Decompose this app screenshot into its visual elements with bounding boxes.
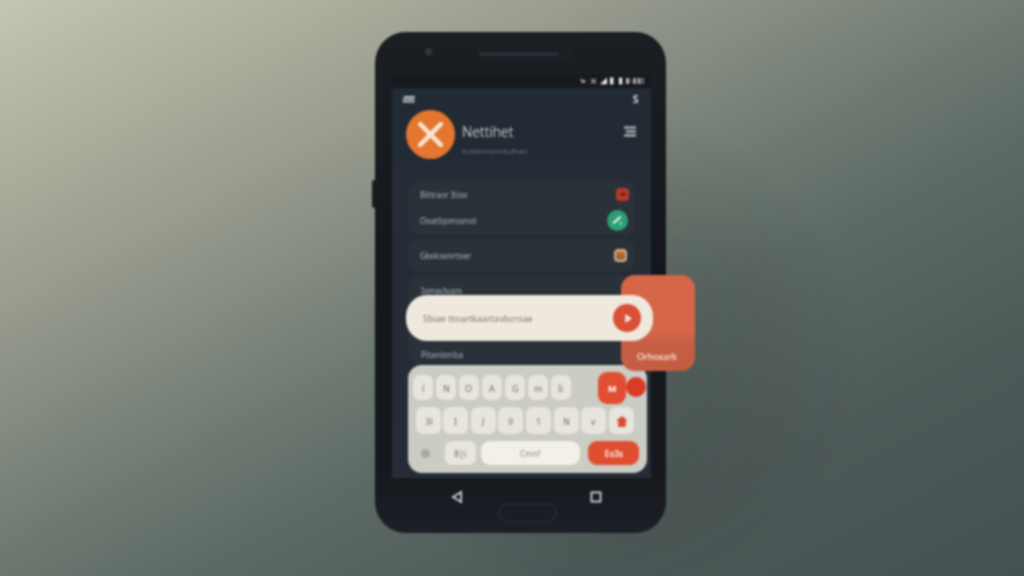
staticText: Cmnf bbox=[520, 448, 541, 459]
button[interactable]: N bbox=[436, 375, 456, 400]
staticText: v bbox=[591, 415, 596, 427]
button[interactable]: Recent apps bbox=[590, 491, 602, 503]
button[interactable]: 3l bbox=[416, 407, 441, 434]
button[interactable]: l bbox=[413, 375, 433, 400]
button[interactable]: Cmnf bbox=[481, 441, 580, 465]
staticText: Kottihmenrdufhan bbox=[462, 146, 528, 156]
button[interactable]: Home bbox=[609, 407, 634, 434]
staticText: Nettihet bbox=[462, 122, 514, 141]
button[interactable]: Ooatbpmsxnot bbox=[408, 206, 635, 235]
staticText: Bittraor Itiox bbox=[420, 189, 468, 200]
staticText: Eo3s bbox=[605, 448, 623, 459]
button[interactable]: 1 bbox=[526, 407, 551, 434]
button[interactable]: 9 bbox=[498, 407, 523, 434]
staticText: 3l bbox=[425, 415, 433, 427]
staticText: N bbox=[443, 382, 450, 394]
button[interactable]: Orhoxark bbox=[621, 275, 695, 371]
button[interactable]: I bbox=[443, 407, 468, 434]
button[interactable]: G bbox=[505, 375, 525, 400]
button[interactable]: Navigation menu bbox=[402, 95, 415, 104]
staticText: S bbox=[633, 92, 639, 106]
button[interactable]: Profile avatar bbox=[406, 110, 455, 159]
button[interactable]: Emoji bbox=[414, 441, 436, 465]
button[interactable]: Gkeksenrtoer bbox=[408, 239, 635, 272]
button[interactable]: Play bbox=[613, 304, 641, 332]
button[interactable]: Bittraor Itiox bbox=[408, 182, 635, 206]
staticText: l bbox=[422, 382, 425, 394]
staticText: Gkeksenrtoer bbox=[420, 250, 472, 261]
button[interactable]: v bbox=[581, 407, 606, 434]
button[interactable]: N bbox=[554, 407, 579, 434]
button[interactable]: M bbox=[598, 372, 626, 404]
button[interactable]: More options bbox=[622, 126, 638, 138]
staticText: A bbox=[489, 382, 495, 394]
staticText: 1 bbox=[536, 415, 542, 427]
staticText: 9 bbox=[508, 415, 514, 427]
button[interactable]: Eo3s bbox=[588, 441, 639, 465]
button[interactable]: O bbox=[459, 375, 479, 400]
staticText: I bbox=[454, 415, 458, 427]
staticText: 8|i bbox=[454, 447, 467, 459]
button[interactable]: Ixmeclvam bbox=[421, 285, 462, 296]
staticText: m bbox=[534, 382, 543, 394]
button[interactable]: Back bbox=[450, 490, 464, 504]
staticText: Ii bbox=[558, 382, 564, 394]
staticText: Ooatbpmsxnot bbox=[420, 215, 477, 226]
staticText: Sbiae ttoartkaartavbcroae bbox=[423, 312, 533, 324]
button[interactable]: J bbox=[471, 407, 496, 434]
staticText: J bbox=[482, 415, 485, 427]
button[interactable]: Notification bbox=[626, 377, 646, 397]
button[interactable]: Sbiae ttoartkaartavbcroae bbox=[406, 295, 653, 341]
button[interactable]: 8|i bbox=[445, 441, 476, 465]
staticText: O bbox=[465, 382, 473, 394]
staticText: N bbox=[563, 415, 570, 427]
button[interactable]: Pitanismba bbox=[421, 349, 464, 360]
staticText: G bbox=[512, 382, 519, 394]
button[interactable]: S bbox=[628, 91, 644, 107]
button[interactable]: A bbox=[482, 375, 502, 400]
staticText: Orhoxark bbox=[637, 350, 677, 362]
staticText: M bbox=[608, 382, 617, 394]
button[interactable]: Ii bbox=[551, 375, 571, 400]
button[interactable]: m bbox=[528, 375, 548, 400]
